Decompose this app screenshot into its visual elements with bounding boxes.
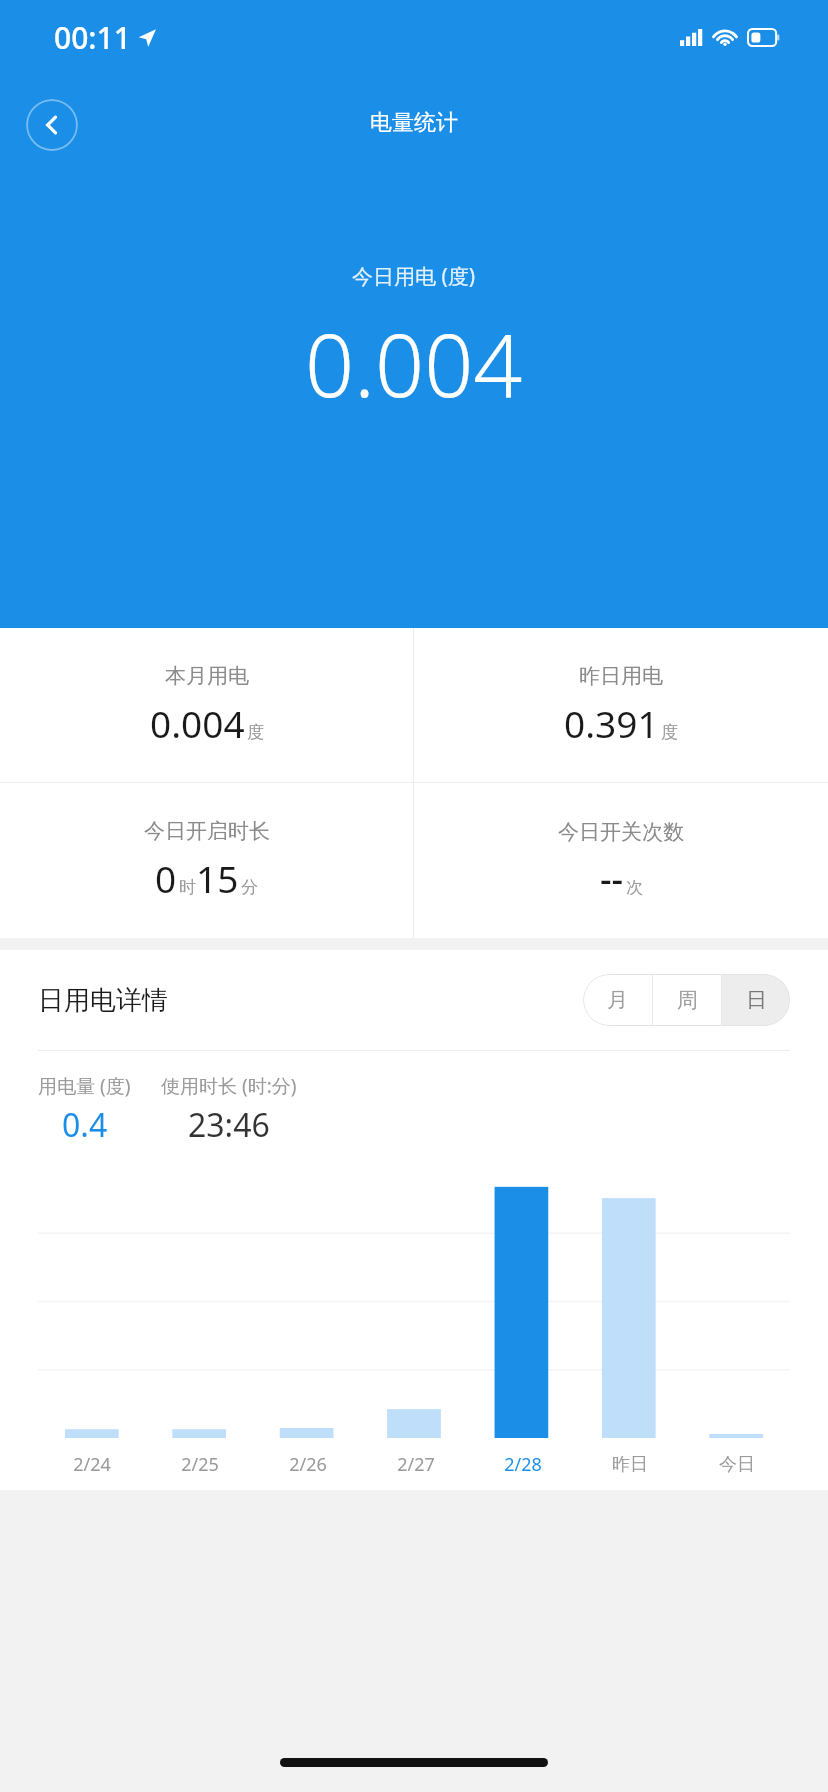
button[interactable]: 周 (653, 974, 721, 1026)
button[interactable]: 2/28 (469, 1438, 576, 1490)
staticText: 使用时长 (时:分) (161, 1073, 297, 1099)
staticText: 0.391 (564, 698, 659, 748)
staticText: 度 (247, 722, 264, 743)
button[interactable]: 昨日用电 (414, 628, 828, 782)
staticText: 2/26 (289, 1452, 327, 1477)
staticText: 今日开关次数 (558, 819, 684, 845)
staticText: 15 (196, 853, 239, 903)
button[interactable]: 日 (722, 974, 790, 1026)
staticText: 本月用电 (165, 663, 249, 689)
staticText: 0.4 (62, 1103, 108, 1147)
button[interactable]: 今日开启时长 (0, 783, 413, 938)
staticText: 昨日用电 (579, 663, 663, 689)
staticText: 日用电详情 (38, 984, 168, 1017)
staticText: 0 (155, 853, 177, 903)
staticText: 度 (661, 722, 678, 743)
button[interactable]: 2/25 (146, 1438, 254, 1490)
staticText: 分 (241, 877, 258, 898)
staticText: 周 (677, 987, 698, 1013)
staticText: 0.004 (305, 305, 523, 422)
staticText: 月 (607, 987, 628, 1013)
button[interactable]: 今日开关次数 (414, 783, 828, 938)
staticText: 0.004 (150, 698, 245, 748)
staticText: 2/27 (397, 1452, 435, 1477)
staticText: 今日用电 (度) (352, 262, 476, 291)
button[interactable]: 2/27 (362, 1438, 469, 1490)
staticText: 00:11 (54, 17, 131, 58)
staticText: -- (600, 854, 624, 903)
staticText: 时 (179, 877, 196, 898)
staticText: 电量统计 (370, 109, 458, 137)
button[interactable]: 2/26 (254, 1438, 362, 1490)
button[interactable]: 月 (583, 974, 652, 1026)
staticText: 2/25 (181, 1452, 219, 1477)
staticText: 23:46 (188, 1103, 270, 1147)
staticText: 今日 (719, 1453, 755, 1476)
button[interactable]: 今日 (683, 1438, 790, 1490)
staticText: 次 (626, 877, 643, 898)
staticText: 昨日 (612, 1453, 648, 1476)
button[interactable]: 本月用电 (0, 628, 413, 782)
button[interactable]: 2/24 (38, 1438, 146, 1490)
button[interactable]: Back (26, 99, 78, 151)
staticText: 日 (746, 987, 767, 1013)
staticText: 今日开启时长 (144, 818, 270, 844)
staticText: 2/28 (504, 1452, 542, 1477)
staticText: 2/24 (73, 1452, 111, 1477)
button[interactable]: 昨日 (576, 1438, 683, 1490)
staticText: 用电量 (度) (38, 1073, 131, 1099)
